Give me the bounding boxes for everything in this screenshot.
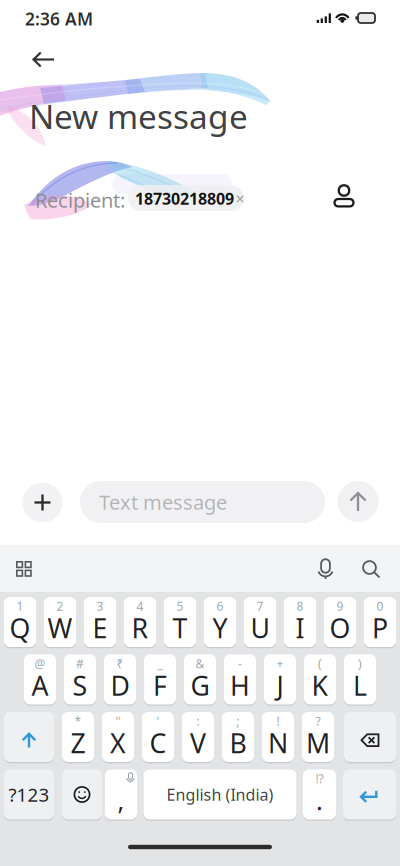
staticText: 8 [296, 598, 303, 614]
staticText: ) [358, 655, 362, 671]
button[interactable]: 4 [124, 597, 156, 647]
button[interactable] [62, 769, 102, 819]
staticText: Y [212, 610, 227, 646]
staticText: # [76, 655, 84, 671]
button[interactable] [105, 769, 137, 819]
staticText: ! [276, 713, 279, 729]
button[interactable]: - [224, 654, 256, 704]
staticText: J [276, 668, 283, 703]
staticText: H [230, 668, 250, 703]
staticText: L [353, 668, 367, 703]
staticText: D [110, 668, 129, 703]
staticText: : [196, 713, 199, 729]
staticText: Recipient: [35, 187, 125, 213]
staticText: 2:36 AM [25, 7, 93, 30]
staticText: New message [29, 94, 248, 138]
staticText: A [31, 668, 48, 703]
button[interactable]: 0 [364, 597, 396, 647]
button[interactable]: # [64, 654, 96, 704]
button[interactable]: * [62, 712, 94, 762]
staticText: T [172, 610, 187, 646]
staticText: @ [34, 655, 45, 671]
button[interactable] [344, 712, 396, 762]
staticText: U [250, 610, 269, 646]
button[interactable] [4, 712, 54, 762]
staticText: P [372, 610, 388, 646]
staticText: + [276, 655, 283, 671]
staticText: 6 [216, 598, 223, 614]
button[interactable]: 8 [284, 597, 316, 647]
button[interactable]: " [102, 712, 134, 762]
staticText: G [190, 668, 209, 703]
staticText: Q [9, 610, 30, 646]
staticText: 18730218809 [135, 188, 234, 209]
staticText: Z [70, 725, 85, 761]
button[interactable] [314, 558, 336, 580]
staticText: ?123 [8, 782, 49, 807]
staticText: 0 [376, 598, 383, 614]
button[interactable]: 2 [44, 597, 76, 647]
button[interactable]: ( [304, 654, 336, 704]
button[interactable]: ; [222, 712, 254, 762]
button[interactable]: Text message [80, 481, 325, 523]
button[interactable]: @ [24, 654, 56, 704]
staticText: 4 [136, 598, 143, 614]
button[interactable] [16, 561, 32, 577]
staticText: O [329, 610, 350, 646]
button[interactable]: 1 [4, 597, 36, 647]
button[interactable] [23, 43, 63, 75]
staticText: _ [157, 655, 162, 671]
staticText: I [295, 610, 304, 646]
button[interactable]: 6 [204, 597, 236, 647]
staticText: W [47, 610, 72, 646]
button[interactable] [22, 482, 62, 522]
staticText: . [316, 784, 323, 817]
staticText: " [115, 713, 120, 729]
staticText: F [153, 668, 167, 703]
staticText: , [117, 784, 124, 817]
button[interactable]: ' [142, 712, 174, 762]
staticText: X [110, 725, 126, 761]
button[interactable] [343, 769, 396, 819]
button[interactable]: 9 [324, 597, 356, 647]
button[interactable]: !? [303, 769, 336, 819]
staticText: - [238, 655, 242, 671]
button[interactable]: 3 [84, 597, 116, 647]
staticText: 2 [56, 598, 63, 614]
staticText: K [311, 668, 328, 703]
staticText: 1 [16, 598, 23, 614]
button[interactable]: : [182, 712, 214, 762]
button[interactable]: ? [302, 712, 334, 762]
staticText: ? [315, 713, 320, 729]
staticText: S [72, 668, 87, 703]
button[interactable] [328, 183, 360, 211]
button[interactable]: English (India) [143, 769, 296, 819]
staticText: !? [315, 770, 323, 786]
staticText: × [235, 188, 244, 209]
staticText: 9 [336, 598, 343, 614]
staticText: C [149, 725, 166, 761]
button[interactable]: + [264, 654, 296, 704]
button[interactable]: ! [262, 712, 294, 762]
staticText: E [92, 610, 107, 646]
staticText: 7 [256, 598, 263, 614]
button[interactable] [337, 481, 378, 522]
button[interactable]: 5 [164, 597, 196, 647]
button[interactable]: 18730218809 [128, 185, 244, 211]
button[interactable]: & [184, 654, 216, 704]
staticText: & [195, 655, 204, 671]
button[interactable]: ) [344, 654, 376, 704]
staticText: ' [156, 713, 159, 729]
button[interactable]: ?123 [4, 769, 54, 819]
staticText: V [190, 725, 206, 761]
button[interactable]: 7 [244, 597, 276, 647]
staticText: ( [318, 655, 322, 671]
button[interactable]: ₹ [104, 654, 136, 704]
button[interactable]: _ [144, 654, 176, 704]
staticText: ₹ [116, 655, 123, 671]
staticText: English (India) [166, 784, 273, 805]
staticText: B [229, 725, 246, 761]
staticText: M [306, 725, 330, 761]
button[interactable] [361, 559, 380, 578]
